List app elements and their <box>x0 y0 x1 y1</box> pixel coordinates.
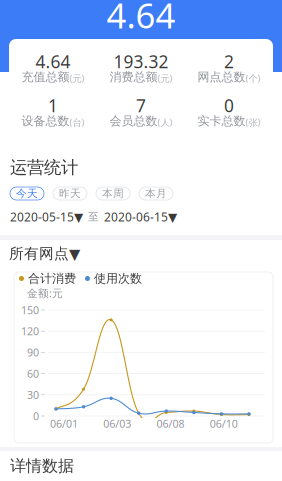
staticText: 06/10 <box>210 416 238 431</box>
staticText: 06/03 <box>103 416 131 431</box>
staticText: 详情数据 <box>10 456 74 476</box>
staticText: 会员总数 <box>109 114 157 128</box>
staticText: 至 <box>88 210 99 223</box>
staticText: 合计消费 <box>28 271 76 286</box>
button[interactable]: 2020-05-15▼ <box>10 209 83 225</box>
staticText: (人) <box>157 116 172 128</box>
staticText: 本月 <box>145 187 167 200</box>
staticText: 0 <box>224 94 234 117</box>
staticText: 1 <box>48 94 58 117</box>
staticText: (元) <box>157 72 172 84</box>
staticText: 2 <box>224 50 234 73</box>
staticText: (个) <box>245 72 260 84</box>
staticText: 0 <box>33 409 39 423</box>
staticText: 金额:元 <box>27 286 63 300</box>
button[interactable]: 本周 <box>96 187 130 200</box>
staticText: 使用次数 <box>94 271 142 286</box>
staticText: (元) <box>69 72 84 84</box>
staticText: 4.64 <box>106 0 175 38</box>
button[interactable]: 昨天 <box>53 187 87 200</box>
button[interactable]: 2020-06-15▼ <box>104 209 177 225</box>
staticText: 06/01 <box>50 416 78 431</box>
staticText: 昨天 <box>59 187 81 200</box>
staticText: 2020-06-15▼ <box>104 209 177 225</box>
staticText: 06/08 <box>156 416 184 431</box>
staticText: 实卡总数 <box>197 114 245 128</box>
staticText: 7 <box>136 94 146 117</box>
staticText: 网点总数 <box>197 70 245 84</box>
button[interactable]: 所有网点▼ <box>9 247 80 260</box>
staticText: 120 <box>21 324 39 338</box>
staticText: 193.32 <box>113 50 168 73</box>
button[interactable]: 本月 <box>139 187 173 200</box>
staticText: 150 <box>21 303 39 317</box>
staticText: 充值总额 <box>21 70 69 84</box>
staticText: 今天 <box>16 187 38 200</box>
staticText: 运营统计 <box>10 157 78 178</box>
staticText: 90 <box>27 345 39 359</box>
staticText: 30 <box>27 388 39 402</box>
staticText: (张) <box>245 116 260 128</box>
button[interactable]: 今天 <box>10 187 44 200</box>
staticText: 本周 <box>102 187 124 200</box>
staticText: 4.64 <box>35 50 70 73</box>
staticText: (台) <box>69 116 84 128</box>
staticText: 2020-05-15▼ <box>10 209 83 225</box>
staticText: 设备总数 <box>21 114 69 128</box>
staticText: 消费总额 <box>109 70 157 84</box>
staticText: 所有网点▼ <box>9 244 80 262</box>
staticText: 60 <box>27 366 39 381</box>
